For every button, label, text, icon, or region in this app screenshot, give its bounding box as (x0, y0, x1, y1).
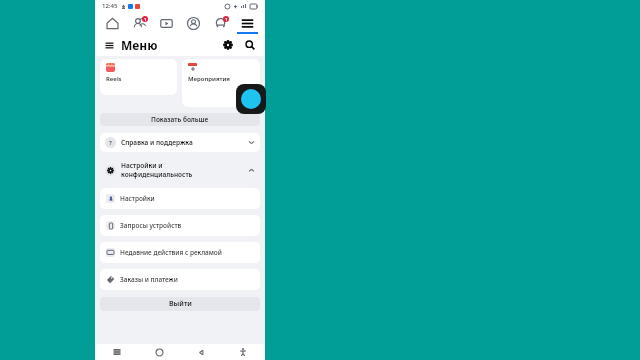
staticText: Меню (121, 37, 158, 53)
staticText: Показать больше (151, 115, 209, 124)
staticText: 1 (225, 17, 228, 22)
staticText: Заказы и платежи (120, 275, 178, 284)
button[interactable]: Выйти (100, 297, 260, 311)
button[interactable]: Back (193, 344, 209, 360)
staticText: Мероприятия (188, 75, 230, 83)
staticText: 12:45 (102, 2, 118, 10)
staticText: Выйти (169, 299, 192, 309)
button[interactable]: Notifications (208, 12, 233, 34)
button[interactable]: Open drawer (102, 38, 116, 52)
button[interactable]: Заказы и платежи (100, 269, 260, 290)
button[interactable]: Home (100, 12, 125, 34)
button[interactable]: Video (154, 12, 179, 34)
button[interactable]: Menu (235, 12, 260, 34)
staticText: Настройки и конфиденциальность (121, 161, 248, 179)
staticText: Запросы устройств (120, 221, 182, 230)
staticText: Справка и поддержка (121, 138, 248, 147)
button[interactable]: Запросы устройств (100, 215, 260, 236)
button[interactable]: Настройки (100, 188, 260, 209)
staticText: Настройки (120, 194, 155, 203)
button[interactable]: Недавние действия с рекламой (100, 242, 260, 263)
staticText: ? (109, 139, 112, 147)
button[interactable]: Search (242, 37, 258, 53)
button[interactable]: Home (151, 344, 167, 360)
button[interactable]: ? (100, 133, 260, 152)
staticText: Reels (106, 75, 122, 83)
button[interactable]: Показать больше (100, 113, 260, 126)
button[interactable]: Settings (220, 37, 236, 53)
button[interactable]: Accessibility (235, 344, 251, 360)
staticText: Недавние действия с рекламой (120, 248, 222, 257)
button[interactable]: Friends (127, 12, 152, 34)
button[interactable]: Recents (109, 344, 125, 360)
button[interactable]: Мероприятия (182, 59, 260, 107)
button[interactable]: Настройки и конфиденциальность (100, 157, 260, 183)
staticText: 1 (144, 17, 147, 22)
button[interactable]: Reels (100, 59, 177, 95)
button[interactable]: Profile (181, 12, 206, 34)
